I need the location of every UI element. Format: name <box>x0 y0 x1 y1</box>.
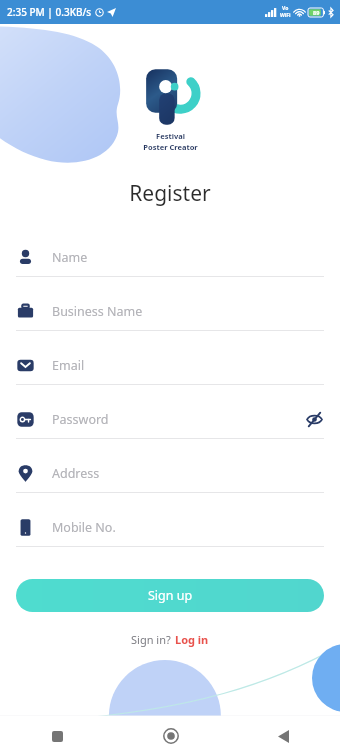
button[interactable]: Business Name <box>0 292 340 346</box>
staticText: Log in <box>175 632 209 647</box>
button[interactable]: Name <box>0 238 340 292</box>
staticText: Sign up <box>148 587 193 604</box>
button[interactable]: Toggle password visibility <box>304 409 324 429</box>
button[interactable]: Address <box>0 454 340 508</box>
button[interactable]: Mobile No. <box>0 508 340 562</box>
staticText: 89 <box>313 9 320 16</box>
button[interactable]: Home <box>114 716 227 756</box>
button[interactable]: Log in <box>175 632 209 647</box>
staticText: Mobile No. <box>52 519 116 536</box>
button[interactable]: Recents <box>0 716 114 756</box>
staticText: Name <box>52 249 88 266</box>
button[interactable]: Email <box>0 346 340 400</box>
button[interactable]: Sign up <box>16 579 324 612</box>
staticText: Sign in? <box>131 632 171 647</box>
staticText: Vo <box>282 5 289 12</box>
staticText: 2:35 PM | 0.3KB/s <box>7 5 92 19</box>
staticText: Festival <box>156 131 185 141</box>
staticText: Business Name <box>52 303 143 320</box>
staticText: Address <box>52 465 100 482</box>
button[interactable]: Back <box>227 716 340 756</box>
staticText: Poster Creator <box>143 142 198 152</box>
staticText: Password <box>52 411 109 428</box>
button[interactable]: Password <box>0 400 340 454</box>
staticText: Register <box>0 179 340 208</box>
staticText: Email <box>52 357 85 374</box>
staticText: WiFi <box>280 12 291 19</box>
